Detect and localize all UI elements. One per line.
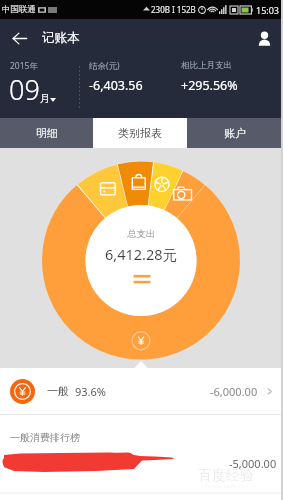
staticText: 月: [40, 92, 50, 105]
staticText: +295.56%: [181, 77, 238, 94]
staticText: 总支出: [127, 228, 156, 240]
staticText: 中国联通: [2, 4, 36, 15]
staticText: 相比上月支出: [181, 60, 232, 71]
button[interactable]: 类别报表: [93, 118, 187, 148]
staticText: -5,000.00: [229, 456, 277, 471]
staticText: 百度经验: [198, 467, 254, 485]
button[interactable]: 账户: [187, 118, 283, 148]
staticText: 2015年: [10, 60, 38, 72]
staticText: -6,000.00: [210, 384, 258, 399]
staticText: 明细: [36, 126, 58, 140]
button[interactable]: 2015年: [0, 57, 79, 118]
staticText: 结余(元): [89, 60, 120, 72]
staticText: 230B I 152B: [151, 4, 196, 15]
button[interactable]: 返回: [0, 19, 38, 57]
button[interactable]: 明细: [0, 118, 93, 148]
staticText: 09: [9, 71, 40, 108]
staticText: 类别报表: [118, 126, 162, 140]
staticText: 账户: [224, 126, 246, 140]
staticText: 一般: [47, 384, 69, 398]
staticText: 一般消费排行榜: [10, 431, 80, 444]
button[interactable]: 切换收支: [131, 272, 153, 286]
staticText: -6,403.56: [89, 77, 143, 94]
button[interactable]: 我的账户: [245, 19, 283, 57]
staticText: 15:03: [256, 4, 280, 16]
button[interactable]: 一般: [0, 368, 283, 414]
staticText: 93.6%: [75, 384, 106, 399]
staticText: 6,412.28元: [105, 244, 178, 264]
staticText: 记账本: [42, 30, 80, 46]
